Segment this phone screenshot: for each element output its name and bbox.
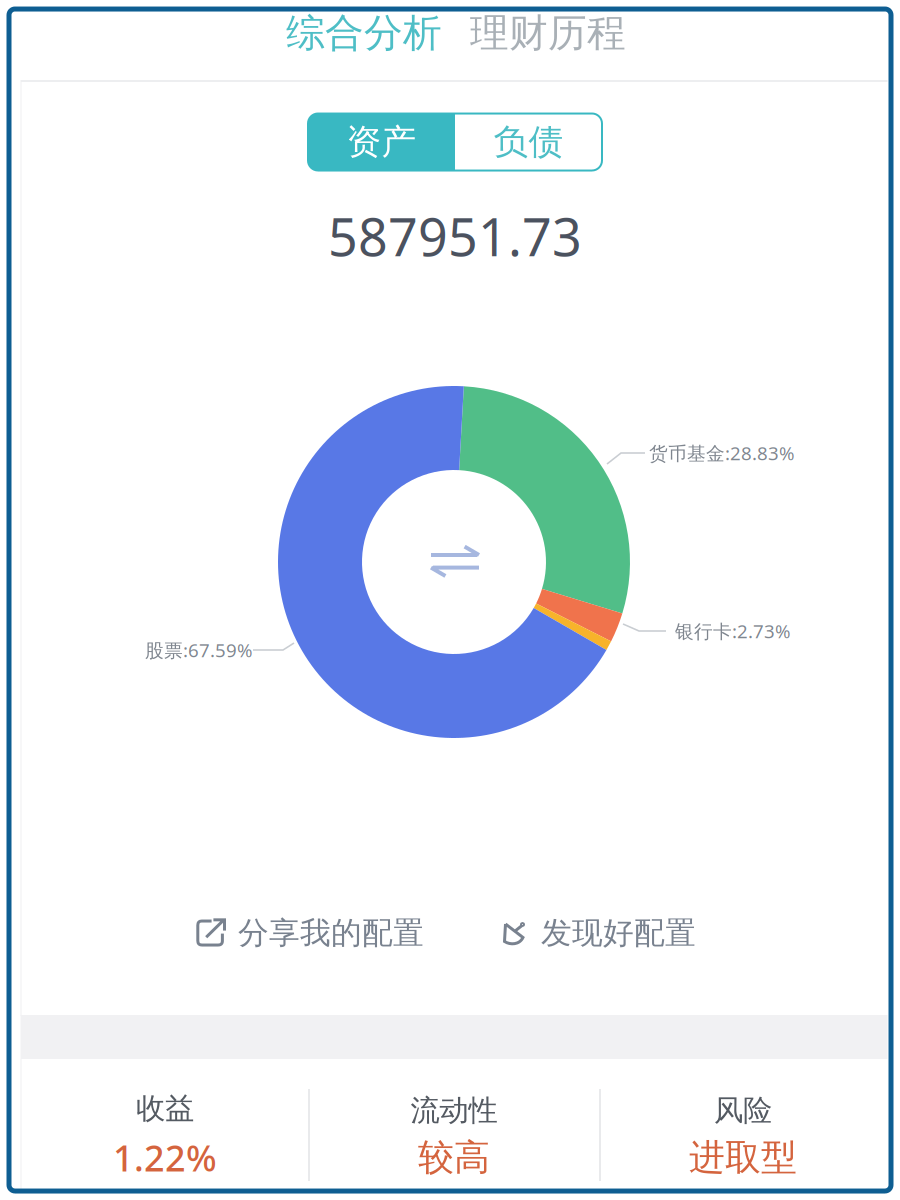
staticText: 1.22% [113, 1134, 217, 1181]
staticText: 流动性 [410, 1092, 497, 1128]
button[interactable]: 负债 [455, 113, 602, 170]
staticText: 股票:67.59% [145, 638, 253, 662]
staticText: 587951.73 [328, 201, 582, 271]
staticText: 风险 [714, 1092, 772, 1128]
button[interactable]: 收益 [20, 1071, 309, 1200]
staticText: 理财历程 [470, 9, 626, 57]
staticText: 收益 [136, 1091, 194, 1127]
staticText: 较高 [418, 1135, 490, 1180]
staticText: 发现好配置 [541, 914, 696, 952]
button[interactable]: 综合分析 [286, 9, 442, 57]
staticText: 分享我的配置 [238, 914, 424, 952]
staticText: 资产 [346, 121, 416, 163]
staticText: 综合分析 [286, 9, 442, 57]
staticText: 货币基金:28.83% [649, 441, 795, 465]
button[interactable]: 理财历程 [470, 9, 626, 57]
button[interactable]: 流动性 [309, 1071, 598, 1200]
button[interactable]: 风险 [598, 1071, 887, 1200]
button[interactable]: 分享我的配置 [196, 914, 424, 952]
staticText: 银行卡:2.73% [675, 619, 791, 643]
button[interactable]: 资产 [308, 113, 455, 170]
staticText: 负债 [493, 121, 563, 163]
button[interactable]: Switch chart [431, 546, 479, 576]
staticText: 进取型 [689, 1135, 797, 1180]
button[interactable]: 发现好配置 [502, 914, 696, 952]
